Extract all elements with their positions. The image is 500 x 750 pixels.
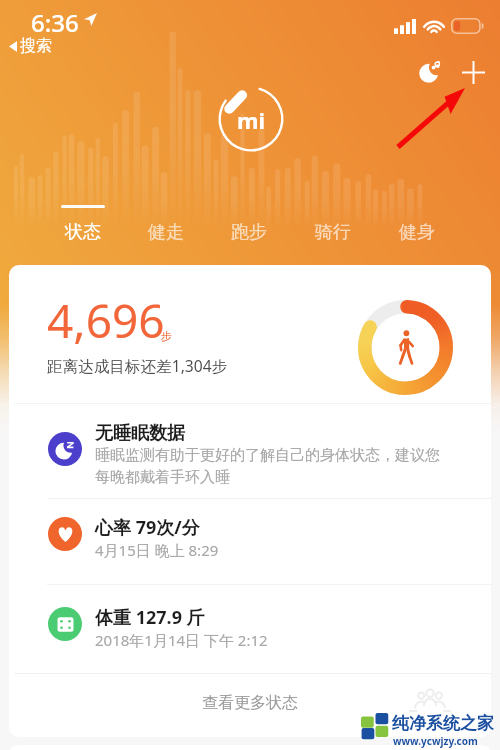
button[interactable]: [9, 585, 491, 673]
button[interactable]: 状态: [41, 200, 124, 246]
button[interactable]: 骑行: [291, 200, 375, 246]
button[interactable]: 健身: [375, 200, 459, 246]
button[interactable]: Sleep mode: [412, 54, 448, 90]
staticText: 健走: [148, 221, 184, 244]
staticText: 睡眠监测有助于更好的了解自己的身体状态，建议您 每晚都戴着手环入睡: [95, 446, 440, 486]
staticText: 2018年1月14日 下午 2:12: [95, 630, 268, 650]
staticText: 距离达成目标还差1,304步: [47, 355, 228, 376]
button[interactable]: [9, 404, 491, 499]
staticText: 跑步: [231, 221, 267, 244]
staticText: 骑行: [315, 221, 351, 244]
staticText: 心率 79次/分: [95, 515, 200, 540]
staticText: 体重 127.9 斤: [95, 605, 205, 630]
button[interactable]: 健走: [124, 200, 207, 246]
staticText: 步: [161, 329, 172, 343]
staticText: 无睡眠数据: [95, 422, 185, 445]
staticText: mi: [237, 105, 266, 135]
staticText: 4月15日 晚上 8:29: [95, 540, 219, 560]
staticText: www.ycwjzy.com: [393, 734, 478, 748]
button[interactable]: Add: [455, 54, 491, 90]
staticText: 健身: [399, 221, 435, 244]
staticText: 4,696: [47, 289, 165, 352]
staticText: 状态: [65, 221, 101, 244]
button[interactable]: 查看更多状态: [9, 669, 491, 737]
button[interactable]: [9, 499, 491, 584]
staticText: 6:36: [31, 6, 79, 39]
staticText: 搜索: [20, 36, 52, 56]
button[interactable]: 跑步: [207, 200, 291, 246]
staticText: 纯净系统之家: [392, 713, 494, 734]
staticText: 查看更多状态: [202, 693, 298, 713]
